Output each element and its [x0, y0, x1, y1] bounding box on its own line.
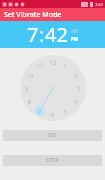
button[interactable]: 7	[27, 21, 39, 48]
button[interactable]: PM	[71, 36, 79, 42]
button[interactable]: AM	[71, 28, 79, 34]
staticText: STOP	[46, 157, 59, 164]
staticText: :	[39, 21, 45, 48]
staticText: Set Vibrate Mode	[4, 10, 62, 20]
staticText: 1	[64, 62, 68, 69]
staticText: 10	[27, 72, 34, 79]
staticText: 9	[25, 85, 29, 92]
staticText: 7	[38, 108, 42, 115]
staticText: 12	[50, 59, 57, 66]
staticText: 7:42	[95, 2, 103, 7]
staticText: 8	[28, 98, 32, 105]
button[interactable]: Set	[3, 130, 102, 141]
button[interactable]: Hour picker	[20, 55, 86, 121]
staticText: 11	[37, 62, 44, 69]
staticText: 4	[74, 98, 78, 105]
button[interactable]: Stop	[3, 155, 102, 166]
staticText: SET	[48, 132, 57, 139]
button[interactable]: 42	[45, 21, 68, 48]
staticText: 2	[74, 72, 78, 79]
staticText: 6	[51, 111, 55, 118]
staticText: 3	[77, 85, 81, 92]
staticText: 5	[64, 108, 68, 115]
